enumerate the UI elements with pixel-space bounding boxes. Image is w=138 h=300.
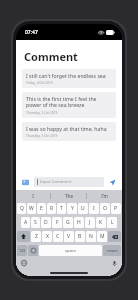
button[interactable]: A (21, 217, 30, 228)
staticText: H (77, 219, 81, 226)
staticText: T (60, 205, 63, 212)
button[interactable]: T (57, 203, 66, 214)
button[interactable]: C (53, 231, 63, 242)
button[interactable]: I (89, 203, 99, 214)
button[interactable]: 123 (17, 245, 27, 256)
button[interactable]: The (51, 190, 86, 201)
button[interactable]: Send (108, 178, 117, 187)
button[interactable]: V (64, 231, 74, 242)
staticText: I was so happy at that time, haha (26, 125, 107, 132)
button[interactable]: S (31, 217, 40, 228)
staticText: Z (35, 233, 38, 240)
button[interactable]: N (86, 231, 96, 242)
button[interactable]: Backspace (108, 231, 121, 242)
staticText: I (32, 193, 34, 199)
button[interactable]: I'm (87, 190, 122, 201)
staticText: A (24, 219, 28, 226)
button[interactable]: I still can't forget the endless sea (22, 69, 116, 88)
button[interactable]: Emoji (28, 245, 38, 256)
staticText: Y (71, 205, 74, 212)
button[interactable]: Y (67, 203, 77, 214)
button[interactable]: K (96, 217, 106, 228)
button[interactable]: space (39, 245, 102, 256)
staticText: 07:47 (25, 29, 38, 36)
button[interactable]: Dictation (110, 259, 118, 267)
staticText: Thursday, 3 Oct 2019 (26, 111, 58, 115)
staticText: C (56, 233, 60, 240)
staticText: The (65, 193, 73, 199)
staticText: V (67, 233, 71, 240)
button[interactable]: I was so happy at that time, haha (22, 122, 116, 141)
button[interactable]: X (42, 231, 52, 242)
staticText: J (89, 219, 91, 226)
staticText: W (29, 205, 34, 212)
button[interactable]: M (97, 231, 107, 242)
button[interactable]: Input Comment (34, 177, 104, 187)
staticText: This is the first time I feel the power … (26, 95, 112, 109)
staticText: Q (20, 205, 24, 212)
button[interactable]: This is the first time I feel the power … (22, 92, 116, 118)
button[interactable]: G (63, 217, 73, 228)
staticText: D (44, 219, 48, 226)
staticText: U (81, 205, 85, 212)
button[interactable]: D (41, 217, 51, 228)
button[interactable]: O (100, 203, 110, 214)
staticText: X (46, 233, 49, 240)
button[interactable]: U (78, 203, 88, 214)
button[interactable]: B (75, 231, 85, 242)
button[interactable]: Add photo (21, 178, 30, 187)
button[interactable]: Change keyboard (20, 259, 28, 267)
staticText: S (34, 219, 37, 226)
staticText: E (40, 205, 43, 212)
button[interactable]: I (16, 190, 50, 201)
staticText: space (65, 248, 76, 253)
button[interactable]: W (27, 203, 36, 214)
button[interactable]: return (103, 245, 121, 256)
button[interactable]: H (74, 217, 84, 228)
button[interactable]: Q (17, 203, 26, 214)
button[interactable]: Z (31, 231, 41, 242)
staticText: F (56, 219, 59, 226)
staticText: K (99, 219, 103, 226)
staticText: R (50, 205, 54, 212)
button[interactable]: E (37, 203, 46, 214)
staticText: B (78, 233, 82, 240)
staticText: I still can't forget the endless sea (26, 72, 106, 79)
staticText: M (100, 233, 105, 240)
button[interactable]: L (107, 217, 117, 228)
staticText: I (93, 205, 95, 212)
button[interactable]: P (111, 203, 121, 214)
staticText: Input Comment (40, 179, 72, 185)
staticText: return (107, 248, 118, 253)
staticText: N (89, 233, 93, 240)
staticText: 123 (19, 248, 26, 253)
staticText: I'm (101, 193, 108, 199)
staticText: L (111, 219, 114, 226)
staticText: O (103, 205, 107, 212)
button[interactable]: J (85, 217, 95, 228)
staticText: Friday, 4 Oct 2019 (26, 81, 53, 85)
staticText: G (66, 219, 70, 226)
button[interactable]: F (52, 217, 62, 228)
button[interactable]: R (47, 203, 56, 214)
staticText: P (114, 205, 118, 212)
button[interactable]: Shift (17, 231, 30, 242)
staticText: Comment (24, 49, 78, 64)
staticText: Thursday, 3 Oct 2019 (26, 134, 58, 138)
